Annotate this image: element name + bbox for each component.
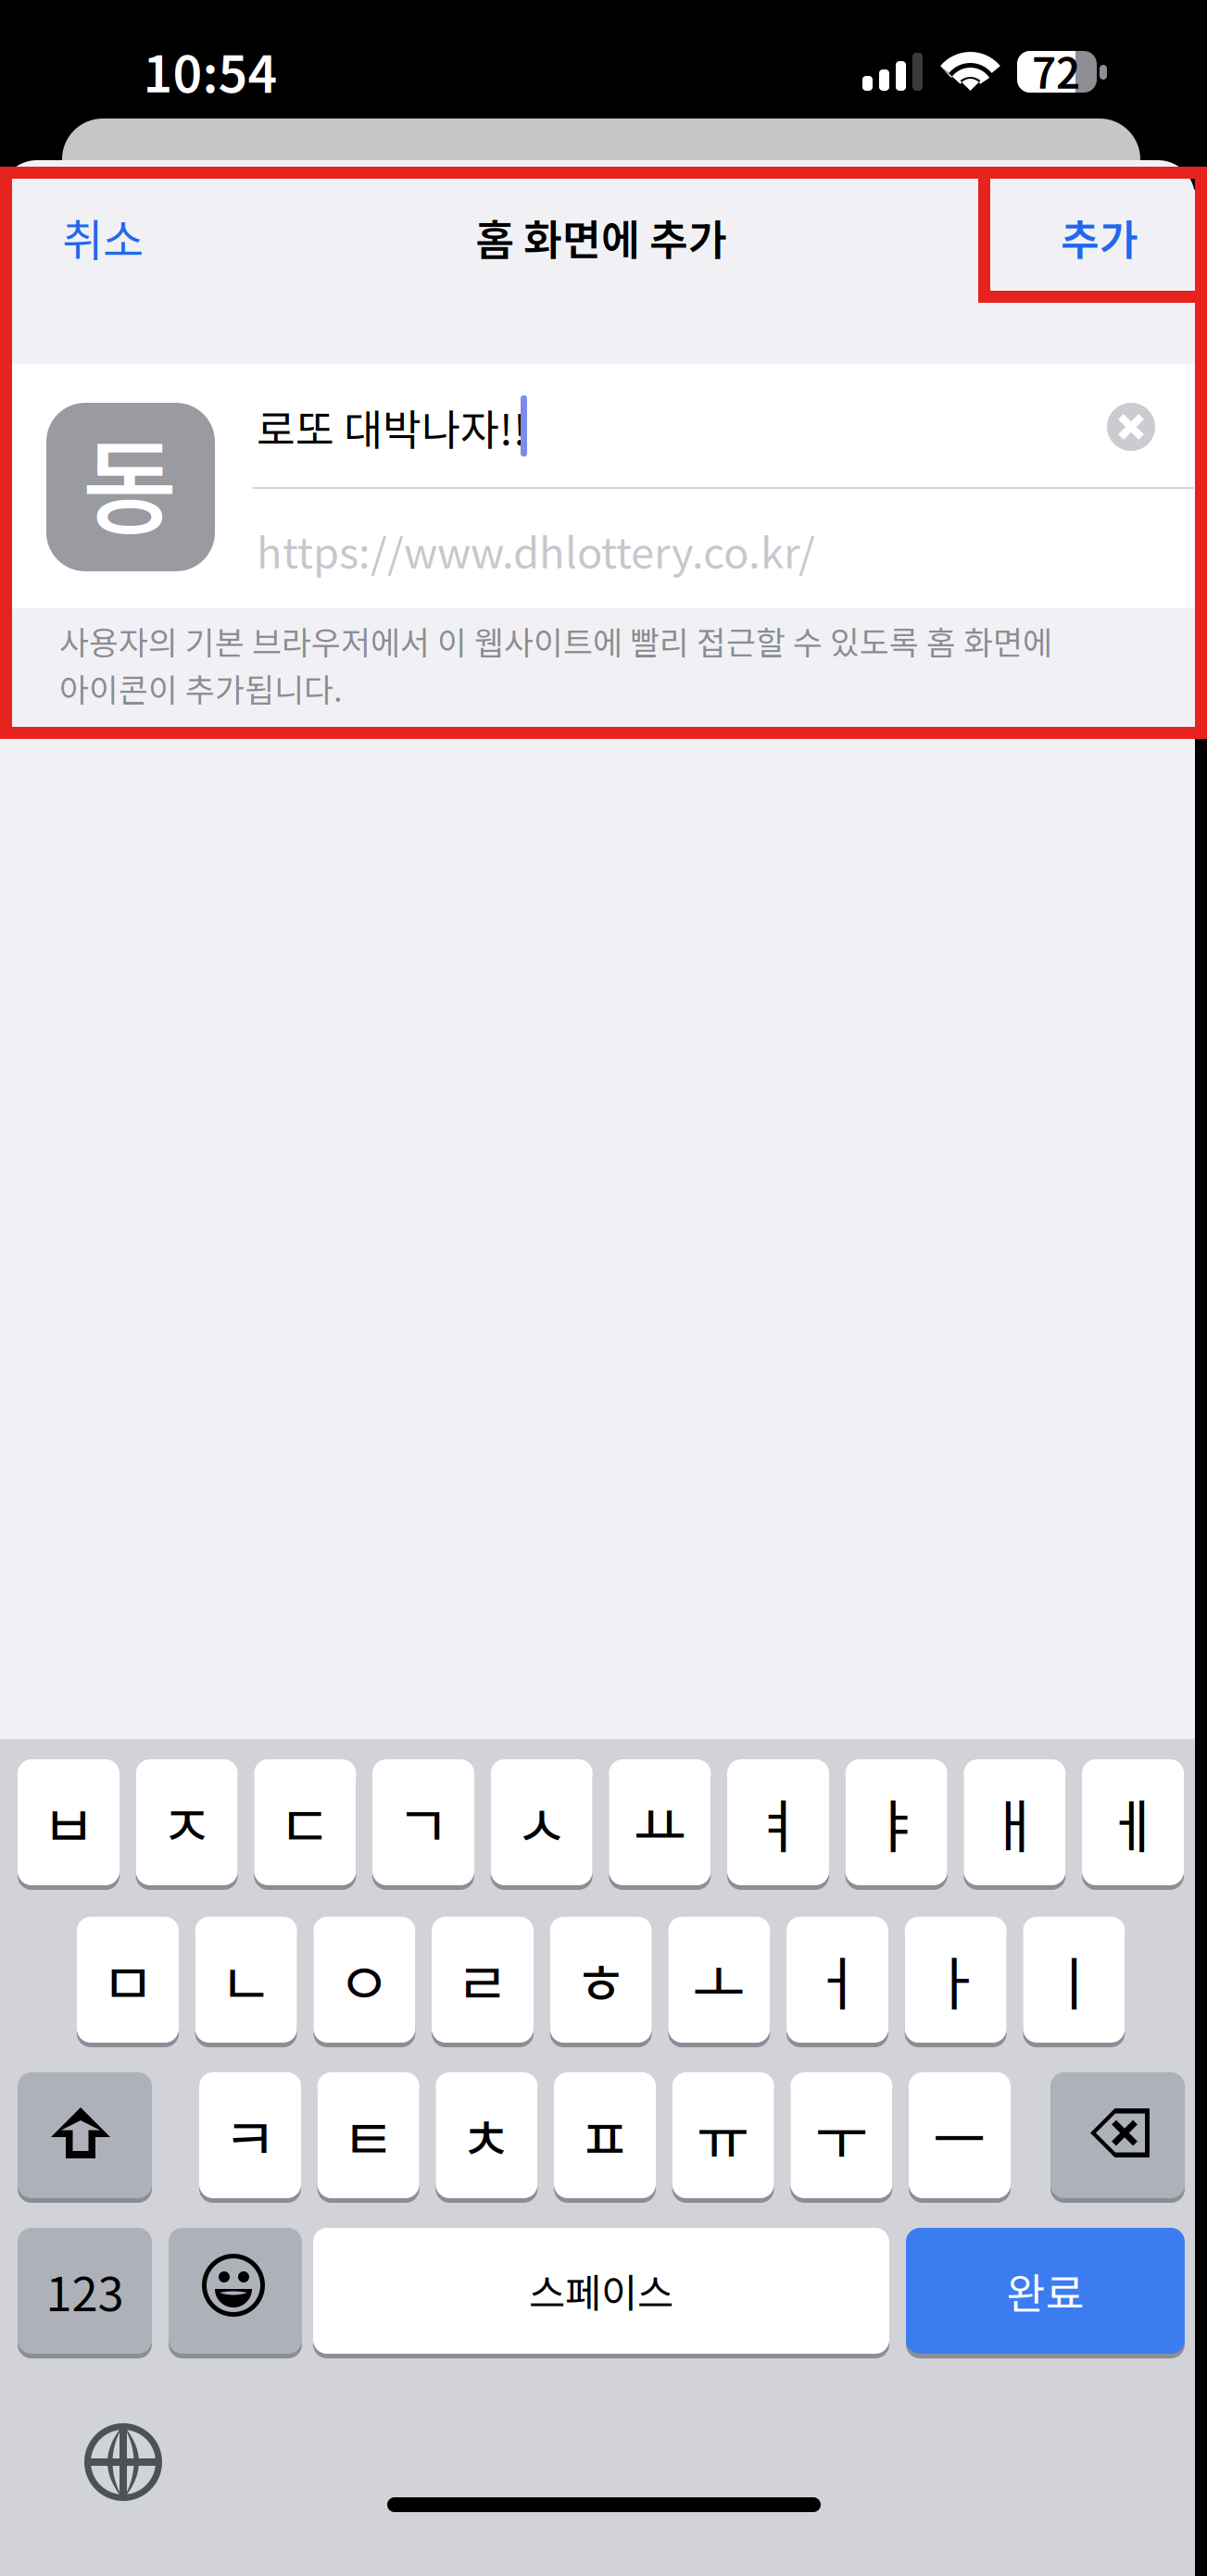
staticText: ㄹ xyxy=(456,1938,509,2022)
staticText: ㅜ xyxy=(815,2093,868,2177)
staticText: ㅂ xyxy=(42,1780,95,1864)
button[interactable]: ㅛ xyxy=(0,0,1207,2576)
button[interactable]: Change keyboard xyxy=(0,0,1207,2576)
staticText: ㅁ xyxy=(101,1938,155,2022)
staticText: ㅡ xyxy=(933,2093,987,2177)
button[interactable]: ㅡ xyxy=(0,0,1207,2576)
button[interactable]: 123 xyxy=(0,0,1207,2576)
staticText: ㅋ xyxy=(223,2093,277,2177)
staticText: ㄷ xyxy=(278,1780,332,1864)
button[interactable]: Delete xyxy=(0,0,1207,2576)
staticText: ㅗ xyxy=(692,1938,746,2022)
staticText: ㄴ xyxy=(219,1938,273,2022)
button[interactable]: ㅐ xyxy=(0,0,1207,2576)
staticText: 72 xyxy=(1032,40,1080,101)
button[interactable]: ㅑ xyxy=(0,0,1207,2576)
button[interactable]: Emoji xyxy=(0,0,1207,2576)
staticText: ㅅ xyxy=(515,1780,568,1864)
staticText: 홈 화면에 추가 xyxy=(475,207,727,267)
staticText: ㅇ xyxy=(337,1938,391,2022)
staticText: 아이콘이 추가됩니다. xyxy=(59,665,343,711)
button[interactable]: ㅈ xyxy=(0,0,1207,2576)
staticText: ㅈ xyxy=(160,1780,214,1864)
button[interactable]: ㅇ xyxy=(0,0,1207,2576)
button[interactable]: 스페이스 xyxy=(0,0,1207,2576)
button[interactable]: 취소 xyxy=(0,0,1207,2576)
staticText: 완료 xyxy=(1006,2260,1084,2321)
staticText: https://www.dhlottery.co.kr/ xyxy=(257,520,815,580)
button[interactable]: ㅔ xyxy=(0,0,1207,2576)
button[interactable]: ㅜ xyxy=(0,0,1207,2576)
staticText: ㅎ xyxy=(574,1938,628,2022)
button[interactable]: ㄴ xyxy=(0,0,1207,2576)
staticText: ㅊ xyxy=(460,2093,513,2177)
button[interactable]: ㅎ xyxy=(0,0,1207,2576)
staticText: ㅕ xyxy=(751,1780,805,1864)
staticText: 사용자의 기본 브라우저에서 이 웹사이트에 빨리 접근할 수 있도록 홈 화면… xyxy=(59,618,1052,664)
staticText: ㄱ xyxy=(396,1780,450,1864)
button[interactable]: ㅋ xyxy=(0,0,1207,2576)
button[interactable]: ㄷ xyxy=(0,0,1207,2576)
staticText: 동 xyxy=(82,405,177,556)
button[interactable]: 추가 xyxy=(0,0,1207,2576)
button[interactable]: ㅕ xyxy=(0,0,1207,2576)
staticText: ㅣ xyxy=(1047,1938,1101,2022)
button[interactable]: ㅍ xyxy=(0,0,1207,2576)
staticText: 123 xyxy=(46,2257,124,2325)
staticText: ㅛ xyxy=(633,1780,687,1864)
button[interactable]: ㄱ xyxy=(0,0,1207,2576)
button[interactable]: ㅏ xyxy=(0,0,1207,2576)
staticText: 로또 대박나자!! xyxy=(257,396,527,457)
staticText: ㅠ xyxy=(696,2093,750,2177)
button[interactable]: ㅁ xyxy=(0,0,1207,2576)
staticText: ㅏ xyxy=(929,1938,983,2022)
staticText: 10:54 xyxy=(143,34,277,107)
button[interactable]: ㅊ xyxy=(0,0,1207,2576)
staticText: 추가 xyxy=(1061,207,1138,267)
button[interactable]: Shift xyxy=(0,0,1207,2576)
staticText: ㅑ xyxy=(870,1780,923,1864)
staticText: ㅌ xyxy=(342,2093,395,2177)
staticText: ㅔ xyxy=(1106,1780,1160,1864)
button[interactable]: ㅌ xyxy=(0,0,1207,2576)
button[interactable]: ㅠ xyxy=(0,0,1207,2576)
button[interactable]: ㅂ xyxy=(0,0,1207,2576)
staticText: ㅐ xyxy=(988,1780,1042,1864)
button[interactable]: 완료 xyxy=(0,0,1207,2576)
staticText: ㅍ xyxy=(578,2093,632,2177)
staticText: 취소 xyxy=(62,205,144,269)
button[interactable]: ㅗ xyxy=(0,0,1207,2576)
button[interactable]: Clear text xyxy=(0,0,1207,2576)
staticText: ㅓ xyxy=(811,1938,864,2022)
button[interactable]: ㅓ xyxy=(0,0,1207,2576)
button[interactable]: ㄹ xyxy=(0,0,1207,2576)
staticText: 스페이스 xyxy=(529,2262,673,2319)
button[interactable]: ㅣ xyxy=(0,0,1207,2576)
button[interactable]: ㅅ xyxy=(0,0,1207,2576)
